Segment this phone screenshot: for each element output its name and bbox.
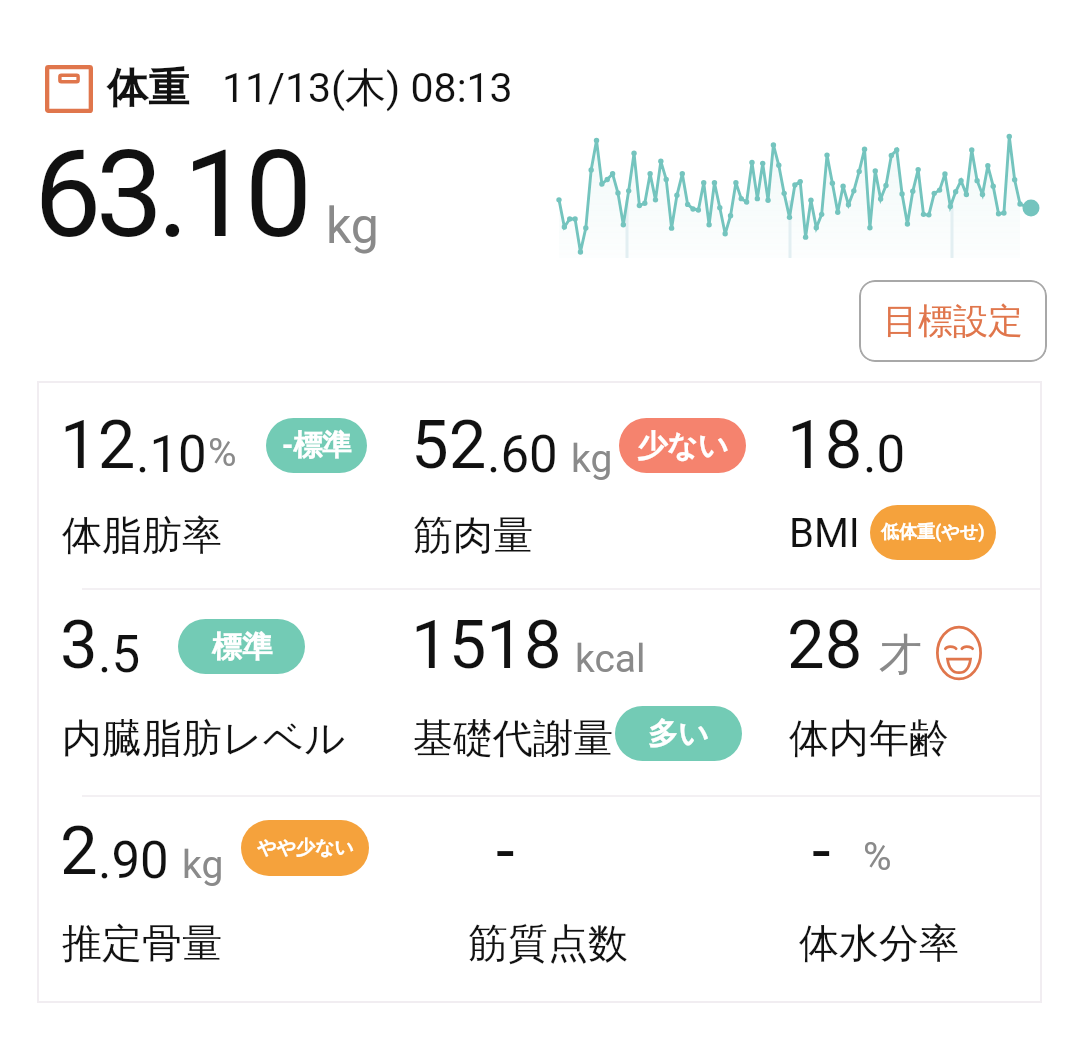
staticText: 内臓脂肪レベル <box>62 713 345 763</box>
staticText: .0 <box>863 425 906 485</box>
staticText: 28 <box>787 606 863 685</box>
staticText: 52 <box>411 406 487 485</box>
staticText: 多い <box>648 715 709 753</box>
staticText: 推定骨量 <box>62 918 222 968</box>
staticText: % <box>863 834 892 880</box>
staticText: - <box>812 812 831 891</box>
staticText: .60 <box>487 425 558 485</box>
staticText: kg <box>326 197 379 256</box>
staticText: kcal <box>575 636 646 682</box>
staticText: kg <box>571 436 613 482</box>
staticText: - <box>496 812 515 891</box>
staticText: 少ない <box>637 427 729 465</box>
staticText: 基礎代謝量 <box>413 713 613 763</box>
button[interactable]: 目標設定 <box>859 280 1047 362</box>
staticText: 12 <box>60 406 136 485</box>
staticText: 2 <box>60 812 98 891</box>
staticText: .90 <box>98 831 169 891</box>
staticText: kg <box>182 842 224 888</box>
staticText: .10 <box>136 425 207 485</box>
staticText: やや少ない <box>257 836 354 860</box>
staticText: -標準 <box>282 427 352 464</box>
staticText: 体脂肪率 <box>62 510 222 560</box>
staticText: 1518 <box>411 606 562 685</box>
staticText: 体重 <box>107 63 189 115</box>
staticText: BMI <box>789 510 860 557</box>
staticText: 11/13(木) 08:13 <box>222 63 513 115</box>
staticText: 目標設定 <box>883 299 1023 343</box>
staticText: 才 <box>879 628 922 682</box>
staticText: 体水分率 <box>799 918 959 968</box>
staticText: 筋肉量 <box>413 510 533 560</box>
staticText: 3 <box>60 606 98 685</box>
staticText: .5 <box>98 625 141 685</box>
staticText: 筋質点数 <box>468 918 628 968</box>
staticText: 18 <box>787 406 863 485</box>
staticText: 63.10 <box>34 125 307 266</box>
staticText: 体内年齢 <box>789 713 949 763</box>
staticText: 低体重(やせ) <box>881 521 985 544</box>
staticText: 標準 <box>212 628 272 666</box>
staticText: % <box>208 430 237 476</box>
other: Weight scale <box>45 65 93 113</box>
